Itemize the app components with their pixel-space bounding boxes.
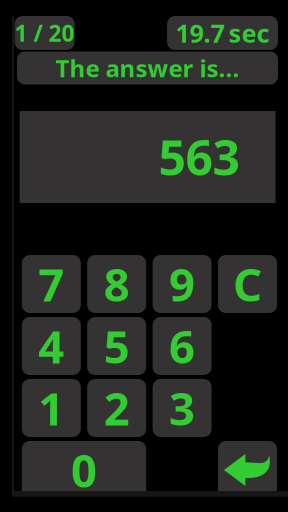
staticText: 1 / 20 <box>15 18 75 48</box>
staticText: 0 <box>71 440 97 500</box>
button[interactable]: 2 <box>87 379 146 437</box>
button[interactable]: 0 <box>22 441 146 499</box>
staticText: 5 <box>104 316 130 376</box>
button[interactable]: 5 <box>87 317 146 375</box>
button[interactable]: 3 <box>153 379 212 437</box>
button[interactable]: 4 <box>22 317 81 375</box>
button[interactable]: C <box>218 255 277 313</box>
button[interactable]: 6 <box>153 317 212 375</box>
button[interactable]: Enter <box>218 441 277 499</box>
button[interactable]: 8 <box>87 255 146 313</box>
button[interactable]: 7 <box>22 255 81 313</box>
staticText: 2 <box>104 378 130 438</box>
staticText: The answer is... <box>55 52 239 84</box>
staticText: 9 <box>169 254 195 314</box>
button[interactable]: 1 <box>22 379 81 437</box>
staticText: 563 <box>159 125 240 189</box>
staticText: 8 <box>104 254 130 314</box>
staticText: 3 <box>169 378 195 438</box>
staticText: C <box>233 254 262 314</box>
staticText: 7 <box>38 254 64 314</box>
button[interactable]: 9 <box>153 255 212 313</box>
staticText: 4 <box>38 316 64 376</box>
staticText: 6 <box>169 316 195 376</box>
staticText: 1 <box>38 378 64 438</box>
staticText: 19.7 sec <box>175 16 269 50</box>
button[interactable]: 19.7 sec <box>167 16 278 50</box>
button[interactable]: 1 / 20 <box>15 16 75 50</box>
